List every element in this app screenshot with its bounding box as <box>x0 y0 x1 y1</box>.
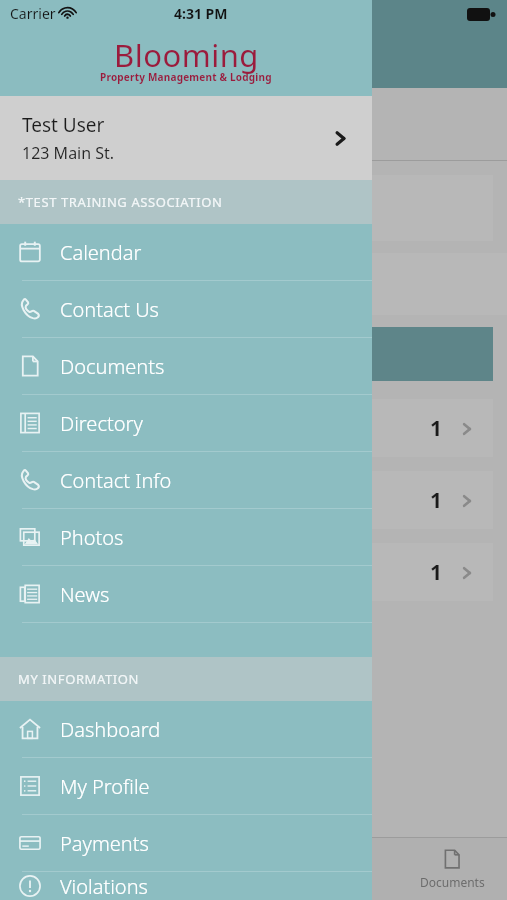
button[interactable]: Contact Us <box>0 281 372 338</box>
button[interactable]: 1 <box>14 399 493 457</box>
button[interactable]: Dashboard <box>0 701 372 758</box>
button[interactable]: 1 <box>14 543 493 601</box>
button[interactable]: Contact Info <box>0 452 372 509</box>
button[interactable]: Calendar <box>0 224 372 281</box>
button[interactable]: Payments <box>0 815 372 872</box>
staticText: My Profile <box>60 773 150 800</box>
staticText: Blooming <box>114 34 259 76</box>
staticText: 1 <box>430 414 443 443</box>
button[interactable]: Documents <box>397 848 507 890</box>
staticText: *TEST TRAINING ASSOCIATION <box>18 193 223 211</box>
staticText: Property Management & Lodging <box>100 70 272 84</box>
staticText: Account Info <box>40 198 130 218</box>
staticText: Documents <box>60 353 165 380</box>
button[interactable]: My Profile <box>0 758 372 815</box>
staticText: Documents <box>420 874 485 890</box>
staticText: MY INFORMATION <box>18 670 140 688</box>
staticText: Calendar <box>60 239 142 266</box>
staticText: 1 <box>430 486 443 515</box>
button[interactable]: Account Info <box>26 191 166 225</box>
staticText: 1 <box>430 558 443 587</box>
button[interactable]: Violations <box>0 872 372 900</box>
staticText: 123 Main St. <box>22 142 115 164</box>
button[interactable]: Photos <box>0 509 372 566</box>
button[interactable]: Directory <box>0 395 372 452</box>
staticText: 4:31 PM <box>174 4 228 23</box>
staticText: Payments <box>60 830 149 857</box>
button[interactable]: News <box>0 566 372 623</box>
staticText: Carrier <box>10 4 56 23</box>
staticText: Directory <box>60 410 143 437</box>
staticText: News <box>60 581 110 608</box>
staticText: Test User <box>22 112 105 138</box>
staticText: Photos <box>60 524 124 551</box>
staticText: Violations <box>60 873 148 900</box>
button[interactable]: Documents <box>0 338 372 395</box>
staticText: Contact Info <box>60 467 172 494</box>
button[interactable]: 1 <box>14 471 493 529</box>
button[interactable]: Test User <box>0 96 372 180</box>
staticText: Dashboard <box>60 716 161 743</box>
staticText: Contact Us <box>60 296 159 323</box>
